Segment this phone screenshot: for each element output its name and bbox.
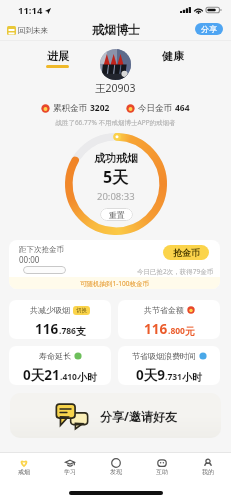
staticText: 20:08:33 [97,190,135,203]
staticText: 抢金币 [173,247,200,258]
staticText: 学习 [64,468,76,476]
staticText: 分享 [201,24,217,34]
staticText: 116 [35,320,59,338]
staticText: 健康 [162,49,184,63]
staticText: 发现 [110,468,122,476]
staticText: 0天9 [136,366,165,384]
staticText: 3202 [90,102,110,114]
staticText: 分享/邀请好友 [100,408,177,424]
button[interactable]: 共节省金额 [118,300,220,339]
staticText: 共减少吸烟 [30,305,70,315]
button[interactable]: 戒烟 [0,453,47,479]
staticText: .786 [59,325,76,337]
staticText: 戒烟博士 [92,22,140,37]
staticText: 0天21 [23,366,60,384]
staticText: 节省吸烟浪费时间 [132,351,196,361]
staticText: 11:14 [18,4,43,17]
button[interactable]: 重置 [100,208,133,221]
button[interactable]: 共减少吸烟 [9,300,111,339]
staticText: 116 [144,320,168,338]
button[interactable]: 分享/邀请好友 [10,393,221,438]
button[interactable]: 分享 [195,23,223,35]
staticText: 今日金币 [138,102,175,114]
staticText: 回到未来 [18,26,48,35]
button[interactable]: 我的 [185,453,231,479]
button[interactable]: 健康 [115,41,231,71]
button[interactable]: 回到未来 [5,24,50,37]
staticText: 今日已抢2次，获得79金币 [137,267,214,276]
staticText: 寿命延长 [39,351,71,361]
staticText: .731 [165,371,182,383]
button[interactable]: 学习 [47,453,93,479]
staticText: 5天 [103,166,129,188]
staticText: 小时 [77,371,97,384]
staticText: 进展 [47,49,69,63]
button[interactable]: 节省吸烟浪费时间 [118,346,220,385]
button[interactable]: 互助 [139,453,185,479]
staticText: 互助 [156,468,168,476]
staticText: 戒烟 [18,468,30,476]
staticText: .800 [168,325,185,337]
staticText: 战胜了66.77% 不用戒烟博士APP的戒烟者 [0,118,231,127]
staticText: 共节省金额 [144,305,184,315]
button[interactable]: 发现 [93,453,139,479]
staticText: 支 [76,325,86,338]
staticText: 小时 [182,371,202,384]
staticText: .410 [60,371,77,383]
button[interactable]: 抢金币 [163,245,209,260]
staticText: 元 [185,325,195,338]
staticText: 王20903 [95,81,136,95]
button[interactable]: 头像 [100,49,131,80]
button[interactable]: 寿命延长 [9,346,111,385]
staticText: 重置 [109,210,125,220]
staticText: 00:00 [19,254,40,265]
staticText: 我的 [202,468,214,476]
staticText: 成功戒烟 [94,151,138,165]
button[interactable]: 进展 [0,41,115,71]
staticText: 可随机抽到1-100枚金币 [80,279,149,288]
staticText: 累积金币 [53,102,90,114]
staticText: 464 [175,102,190,114]
staticText: 距下次抢金币 [19,245,64,254]
staticText: 切换 [76,307,87,314]
